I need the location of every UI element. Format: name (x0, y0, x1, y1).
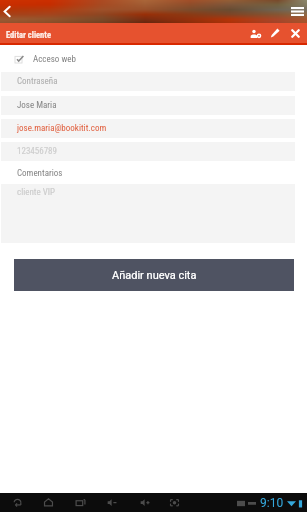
staticText: jose.maria@bookitit.com (17, 123, 107, 134)
staticText: Contraseña (17, 76, 58, 87)
button[interactable]: Back (8, 493, 26, 512)
staticText: Jose Maria (17, 100, 57, 111)
button[interactable]: 123456789 (1, 142, 295, 161)
button[interactable]: Añadir nueva cita (14, 259, 294, 291)
button[interactable]: Volume down (103, 493, 121, 512)
button[interactable]: Volume up (136, 493, 154, 512)
staticText: Acceso web (33, 54, 76, 65)
button[interactable]: Home (39, 493, 57, 512)
button[interactable]: Menu (287, 0, 307, 23)
button[interactable]: Jose Maria (1, 96, 295, 115)
staticText: Editar cliente (6, 30, 51, 40)
staticText: 123456789 (17, 146, 57, 157)
button[interactable]: Contraseña (1, 72, 295, 91)
button[interactable]: Recents (71, 493, 89, 512)
button[interactable]: Acceso web (15, 54, 76, 65)
staticText: Comentarios (17, 168, 63, 179)
button[interactable]: Back (0, 0, 16, 23)
button[interactable]: jose.maria@bookitit.com (1, 119, 295, 138)
staticText: Añadir nueva cita (112, 269, 197, 282)
button[interactable]: Screenshot (165, 493, 183, 512)
staticText: cliente VIP (17, 187, 56, 198)
button[interactable]: Add client (245, 23, 265, 43)
button[interactable]: Close (285, 23, 305, 43)
button[interactable]: Edit (265, 23, 285, 43)
staticText: 9:10 (260, 496, 284, 510)
